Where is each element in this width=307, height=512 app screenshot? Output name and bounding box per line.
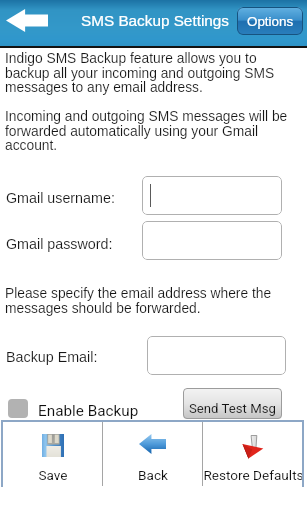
staticText: Send Test Msg <box>189 401 276 416</box>
button[interactable]: Restore Defaults <box>203 422 302 487</box>
staticText: Restore Defaults <box>203 467 302 483</box>
staticText: Incoming and outgoing SMS messages will … <box>5 109 288 153</box>
button[interactable]: Backup email <box>147 336 286 375</box>
staticText: Options <box>247 14 294 29</box>
button[interactable]: Navigate up <box>2 5 52 37</box>
staticText: Enable Backup <box>38 402 139 420</box>
button[interactable]: Gmail password <box>142 221 282 260</box>
button[interactable]: Save <box>3 422 102 487</box>
button[interactable]: Send Test Msg <box>183 388 282 419</box>
staticText: Save <box>38 467 68 483</box>
button[interactable]: Back <box>103 422 202 487</box>
staticText: Gmail username: <box>6 190 115 206</box>
staticText: Indigo SMS Backup feature allows you to … <box>5 51 275 95</box>
staticText: Back <box>138 467 168 483</box>
staticText: Please specify the email address where t… <box>5 286 272 316</box>
staticText: Gmail password: <box>6 236 113 252</box>
button[interactable]: Gmail username <box>142 176 282 215</box>
button[interactable]: Enable Backup <box>8 399 139 418</box>
staticText: SMS Backup Settings <box>81 12 229 29</box>
staticText: Backup Email: <box>6 349 98 365</box>
button[interactable]: Options <box>237 7 303 35</box>
